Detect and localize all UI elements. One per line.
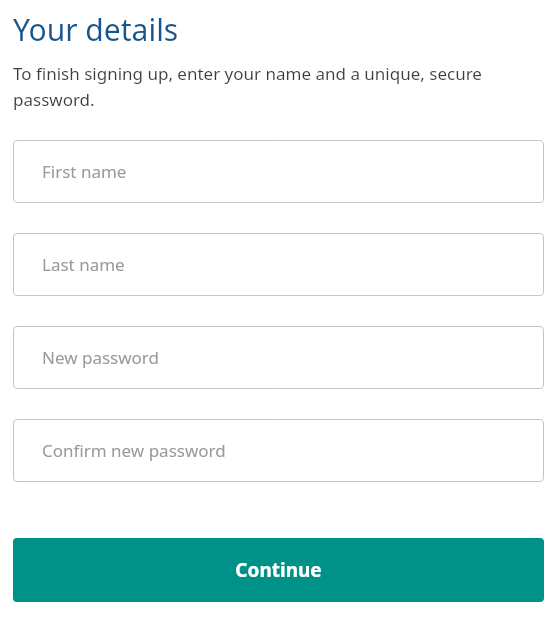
button[interactable]: New password — [13, 326, 544, 389]
staticText: First name — [42, 160, 127, 183]
button[interactable]: Continue — [13, 538, 544, 602]
staticText: Continue — [235, 557, 322, 583]
staticText: Your details — [13, 9, 179, 50]
button[interactable]: First name — [13, 140, 544, 203]
button[interactable]: Last name — [13, 233, 544, 296]
staticText: To finish signing up, enter your name an… — [13, 62, 544, 111]
button[interactable]: Confirm new password — [13, 419, 544, 482]
staticText: Confirm new password — [42, 439, 226, 462]
staticText: New password — [42, 346, 160, 369]
staticText: Last name — [42, 253, 125, 276]
